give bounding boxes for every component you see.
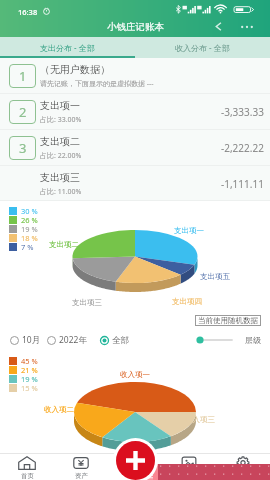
staticText: -2,222.22	[221, 141, 264, 155]
staticText: 45 %	[21, 356, 38, 365]
staticText: 10月	[22, 334, 41, 346]
button[interactable]: 收入分布 - 全部	[135, 37, 270, 58]
staticText: 支出项一	[174, 226, 204, 235]
staticText: 支出项五	[200, 272, 230, 281]
staticText: 请先记账，下面显示的是虚拟数据 ---	[40, 79, 154, 89]
staticText: 支出项二	[40, 135, 80, 148]
staticText: 小钱庄记账本	[107, 21, 164, 33]
staticText: 支出项一	[40, 99, 80, 112]
button[interactable]: 全部	[100, 332, 129, 348]
staticText: 15 %	[21, 383, 38, 392]
button[interactable]: 1	[0, 58, 270, 94]
staticText: 支出项二	[49, 240, 79, 249]
staticText: 16:38	[18, 7, 38, 17]
staticText: 7 %	[21, 242, 34, 251]
staticText: 18 %	[21, 233, 38, 242]
staticText: 收入项三	[185, 415, 215, 424]
button[interactable]: More options	[237, 17, 257, 37]
button[interactable]: 支出分布 - 全部	[0, 37, 135, 58]
staticText: 19 %	[21, 374, 38, 383]
button[interactable]: 3	[0, 130, 270, 166]
staticText: 占比: 33.00%	[40, 115, 82, 125]
button[interactable]: 首页	[0, 453, 54, 480]
staticText: 收入项一	[120, 370, 150, 379]
staticText: 21 %	[21, 365, 38, 374]
staticText: 支出项三	[72, 298, 102, 307]
staticText: 19 %	[21, 224, 38, 233]
button[interactable]: Level slider	[192, 333, 238, 347]
staticText: 1	[19, 67, 27, 85]
button[interactable]: 2022年	[47, 332, 87, 348]
staticText: 当前使用随机数据	[198, 316, 258, 325]
staticText: 2022年	[59, 334, 87, 346]
staticText: 3	[19, 139, 27, 157]
staticText: 层级	[245, 335, 261, 345]
button[interactable]: 资产	[54, 453, 108, 480]
staticText: 2	[19, 103, 27, 121]
staticText: -1,111.11	[221, 177, 264, 191]
staticText: 支出项三	[40, 171, 80, 184]
staticText: 全部	[112, 335, 129, 346]
staticText: -3,333.33	[221, 105, 264, 119]
staticText: 收入项二	[44, 405, 74, 414]
button[interactable]: 10月	[10, 332, 41, 348]
staticText: （无用户数据）	[40, 63, 110, 76]
staticText: 30 %	[21, 206, 38, 215]
button[interactable]: 支出项三	[0, 166, 270, 201]
staticText: 占比: 22.00%	[40, 151, 82, 161]
staticText: 支出分布 - 全部	[40, 42, 95, 53]
staticText: 26 %	[21, 215, 38, 224]
button[interactable]: Settings	[216, 453, 270, 480]
staticText: 支出项四	[172, 297, 202, 306]
staticText: 占比: 11.00%	[40, 187, 82, 197]
button[interactable]: Back	[209, 17, 227, 35]
staticText: 收入分布 - 全部	[175, 42, 230, 53]
button[interactable]: Reports	[162, 453, 216, 480]
staticText: 首页	[21, 472, 34, 480]
button[interactable]: 2	[0, 94, 270, 130]
staticText: 资产	[75, 472, 88, 480]
button[interactable]: Add record	[116, 441, 155, 480]
